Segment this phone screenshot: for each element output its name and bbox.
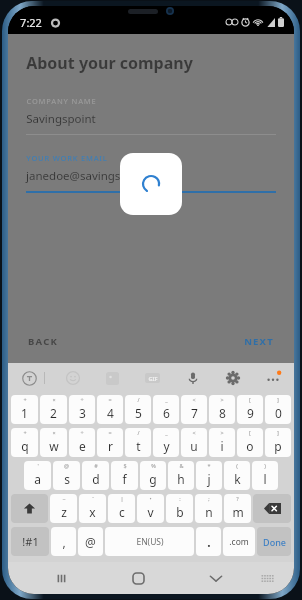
- staticText: i: [220, 438, 224, 454]
- staticText: ?: [236, 495, 239, 502]
- button[interactable]: <: [181, 428, 207, 457]
- staticText: Savingspoint: [26, 111, 96, 127]
- button[interactable]: BACK: [26, 329, 60, 354]
- button[interactable]: :: [166, 494, 193, 523]
- staticText: $: [123, 462, 127, 469]
- staticText: .com: [229, 536, 249, 548]
- button[interactable]: =: [97, 428, 123, 457]
- staticText: <: [192, 396, 196, 403]
- button[interactable]: `: [79, 494, 106, 523]
- staticText: 7: [191, 405, 198, 421]
- staticText: BACK: [28, 335, 58, 348]
- staticText: !#1: [22, 534, 39, 549]
- button[interactable]: ÷: [69, 428, 95, 457]
- button[interactable]: Home: [100, 562, 177, 594]
- staticText: c: [119, 504, 125, 520]
- staticText: ÷: [80, 429, 84, 436]
- staticText: /: [137, 429, 140, 436]
- button[interactable]: ]: [265, 395, 291, 424]
- button[interactable]: Hide keyboard: [177, 562, 254, 594]
- button[interactable]: ~: [50, 494, 77, 523]
- staticText: y: [163, 438, 170, 454]
- staticText: e: [79, 438, 86, 454]
- button[interactable]: /: [125, 428, 151, 457]
- button[interactable]: +: [11, 395, 38, 424]
- button[interactable]: +: [11, 428, 38, 457]
- staticText: 3: [79, 405, 86, 421]
- button[interactable]: ÷: [69, 395, 95, 424]
- button[interactable]: Emoji: [62, 367, 84, 389]
- button[interactable]: Voice input: [182, 367, 204, 389]
- button[interactable]: NEXT: [242, 329, 276, 354]
- button[interactable]: More options: [262, 367, 284, 389]
- staticText: ]: [277, 429, 279, 436]
- button[interactable]: (: [224, 461, 250, 490]
- staticText: m: [232, 504, 244, 520]
- button[interactable]: [: [237, 428, 263, 457]
- staticText: k: [234, 471, 241, 487]
- button[interactable]: %: [140, 461, 166, 490]
- staticText: >: [220, 396, 224, 403]
- button[interactable]: ×: [40, 428, 67, 457]
- staticText: =: [108, 396, 112, 403]
- staticText: q: [21, 438, 29, 454]
- staticText: j: [207, 471, 211, 487]
- staticText: h: [177, 471, 185, 487]
- button[interactable]: .: [196, 527, 221, 556]
- button[interactable]: |: [108, 494, 135, 523]
- button[interactable]: Switch keyboard: [254, 562, 280, 594]
- button[interactable]: _: [153, 395, 179, 424]
- button[interactable]: ;: [195, 494, 222, 523]
- button[interactable]: ): [252, 461, 278, 490]
- button[interactable]: •: [137, 494, 164, 523]
- button[interactable]: ?: [224, 494, 251, 523]
- staticText: 2: [50, 405, 57, 421]
- button[interactable]: Recents: [22, 562, 100, 594]
- button[interactable]: !#1: [11, 527, 49, 556]
- button[interactable]: ,: [51, 527, 76, 556]
- button[interactable]: [: [237, 395, 263, 424]
- button[interactable]: EN(US): [105, 527, 194, 556]
- button[interactable]: .com: [223, 527, 255, 556]
- staticText: b: [176, 504, 184, 520]
- staticText: d: [92, 471, 100, 487]
- staticText: ÷: [80, 396, 84, 403]
- staticText: s: [64, 471, 70, 487]
- staticText: *: [207, 462, 211, 469]
- button[interactable]: Shift: [11, 494, 48, 523]
- button[interactable]: Backspace: [253, 494, 291, 523]
- button[interactable]: GIF: [140, 366, 164, 390]
- button[interactable]: @: [53, 461, 80, 490]
- button[interactable]: @: [78, 527, 103, 556]
- staticText: •: [149, 495, 152, 502]
- button[interactable]: Settings: [222, 367, 244, 389]
- button[interactable]: ×: [40, 395, 67, 424]
- staticText: @: [85, 534, 96, 550]
- button[interactable]: <: [181, 395, 207, 424]
- staticText: ;: [208, 495, 210, 502]
- button[interactable]: ': [24, 461, 51, 490]
- button[interactable]: >: [209, 395, 235, 424]
- staticText: 4: [107, 405, 114, 421]
- button[interactable]: Stickers: [101, 367, 123, 389]
- staticText: v: [147, 504, 154, 520]
- button[interactable]: Translate: [18, 367, 40, 389]
- staticText: w: [49, 438, 59, 454]
- button[interactable]: #: [82, 461, 109, 490]
- staticText: 9: [247, 405, 254, 421]
- staticText: janedoe@savingspoint.com: [26, 168, 175, 184]
- button[interactable]: *: [196, 461, 222, 490]
- button[interactable]: =: [97, 395, 123, 424]
- button[interactable]: /: [125, 395, 151, 424]
- staticText: 5: [135, 405, 142, 421]
- staticText: o: [246, 438, 254, 454]
- staticText: 7:22: [20, 15, 42, 30]
- staticText: GIF: [148, 375, 158, 382]
- button[interactable]: _: [153, 428, 179, 457]
- button[interactable]: >: [209, 428, 235, 457]
- staticText: z: [61, 504, 67, 520]
- button[interactable]: ]: [265, 428, 291, 457]
- button[interactable]: &: [168, 461, 194, 490]
- button[interactable]: Done: [257, 527, 291, 556]
- button[interactable]: $: [111, 461, 138, 490]
